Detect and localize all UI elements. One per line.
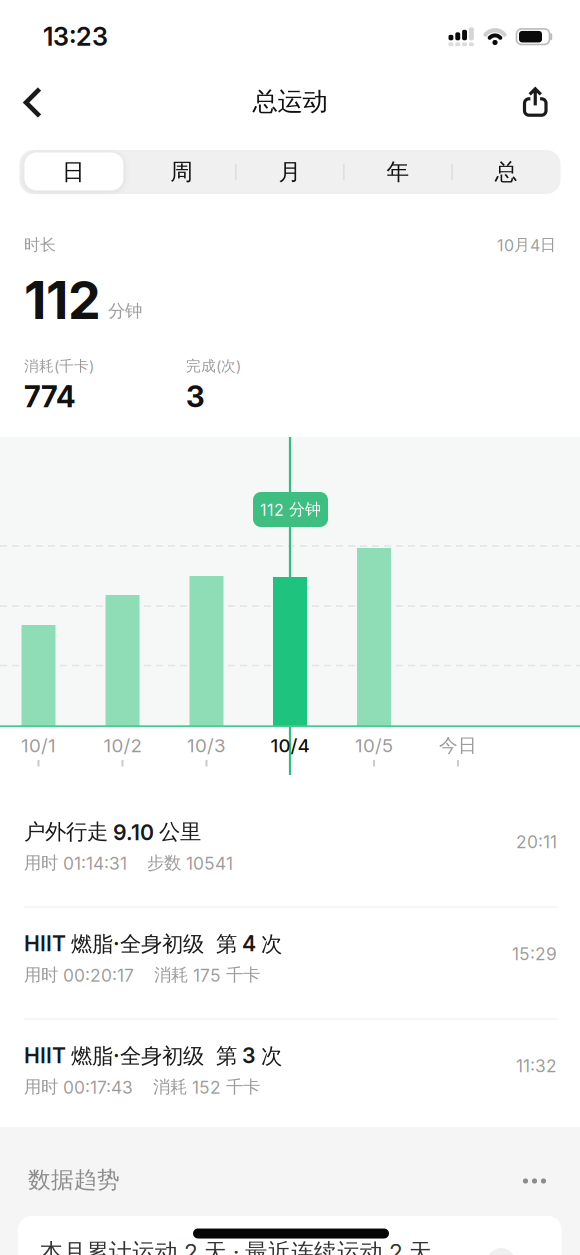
staticText: 20:11 <box>516 832 557 852</box>
button[interactable]: Back <box>18 80 62 124</box>
staticText: 月 <box>278 158 301 186</box>
staticText: HIIT 燃脂·全身初级 第 4 次 <box>24 931 282 957</box>
staticText: 今日 <box>439 734 477 757</box>
staticText: 10月4日 <box>497 235 556 255</box>
staticText: 用时 00:17:43 消耗 152 千卡 <box>24 1076 260 1098</box>
staticText: 10/2 <box>103 734 141 756</box>
staticText: 10/4 <box>270 734 309 756</box>
button[interactable]: More <box>514 1159 554 1203</box>
button[interactable]: 年 <box>345 150 451 194</box>
staticText: 10/5 <box>355 734 393 756</box>
staticText: 数据趋势 <box>28 1166 120 1194</box>
staticText: HIIT 燃脂·全身初级 第 3 次 <box>24 1043 282 1069</box>
staticText: 112 <box>24 269 101 331</box>
staticText: 完成(次) <box>186 357 241 375</box>
button[interactable]: HIIT 燃脂·全身初级 第 4 次 <box>0 907 580 1019</box>
staticText: 10/1 <box>21 734 56 756</box>
staticText: 分钟 <box>108 300 142 322</box>
staticText: 112 分钟 <box>260 500 321 519</box>
button[interactable]: Share <box>515 82 555 122</box>
staticText: 15:29 <box>512 944 557 964</box>
staticText: 总 <box>495 158 518 186</box>
staticText: 消耗(千卡) <box>24 357 94 375</box>
staticText: 时长 <box>24 235 56 255</box>
staticText: 年 <box>387 158 410 186</box>
staticText: 3 <box>186 379 205 414</box>
button[interactable]: 月 <box>237 150 343 194</box>
staticText: 周 <box>170 158 193 186</box>
staticText: 774 <box>24 379 76 414</box>
staticText: 10/3 <box>187 734 226 756</box>
staticText: 户外行走 9.10 公里 <box>24 819 201 845</box>
staticText: 总运动 <box>252 86 327 117</box>
button[interactable]: 日 <box>20 150 126 194</box>
staticText: 本月累计运动 2 天 · 最近连续运动 2 天 <box>40 1238 432 1255</box>
button[interactable]: 户外行走 9.10 公里 <box>0 795 580 907</box>
button[interactable]: 周 <box>129 150 235 194</box>
staticText: 用时 01:14:31 步数 10541 <box>24 852 233 874</box>
button[interactable]: HIIT 燃脂·全身初级 第 3 次 <box>0 1019 580 1131</box>
staticText: 日 <box>62 158 85 186</box>
staticText: 13:23 <box>43 22 108 51</box>
staticText: 11:32 <box>516 1056 557 1076</box>
button[interactable]: 总 <box>453 150 559 194</box>
staticText: 用时 00:20:17 消耗 175 千卡 <box>24 964 260 986</box>
